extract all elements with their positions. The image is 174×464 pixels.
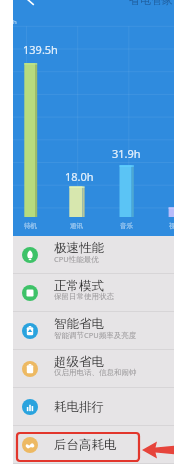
button[interactable]: 正常模式 xyxy=(13,274,174,312)
staticText: 音乐 xyxy=(120,222,133,230)
button[interactable]: 后台高耗电 xyxy=(13,426,174,464)
staticText: 139.5h xyxy=(23,42,58,57)
staticText: 通讯 xyxy=(70,222,83,230)
button[interactable]: Back xyxy=(21,0,41,10)
staticText: 仅启用电话、信息和闹钟 xyxy=(54,368,137,377)
button[interactable]: 超级省电 xyxy=(13,350,174,388)
staticText: 视频 xyxy=(169,222,174,230)
staticText: 18.0h xyxy=(65,169,94,184)
staticText: 待机 xyxy=(24,222,37,230)
staticText: 智能调节CPU频率及亮度 xyxy=(54,330,137,340)
staticText: 正常模式 xyxy=(54,278,104,294)
staticText: 31.9h xyxy=(112,146,141,161)
staticText: 耗电排行 xyxy=(54,399,104,415)
staticText: 保留日常使用状态 xyxy=(54,292,114,301)
staticText: 智能省电 xyxy=(54,316,104,332)
staticText: 超级省电 xyxy=(54,354,104,370)
staticText: h xyxy=(13,18,17,26)
staticText: 极速性能 xyxy=(54,240,104,256)
staticText: 后台高耗电 xyxy=(54,437,117,453)
staticText: 省电管家 xyxy=(129,0,173,7)
button[interactable]: 耗电排行 xyxy=(13,388,174,426)
staticText: CPU性能最优 xyxy=(54,254,99,264)
button[interactable]: 智能省电 xyxy=(13,312,174,350)
button[interactable]: 极速性能 xyxy=(13,236,174,274)
